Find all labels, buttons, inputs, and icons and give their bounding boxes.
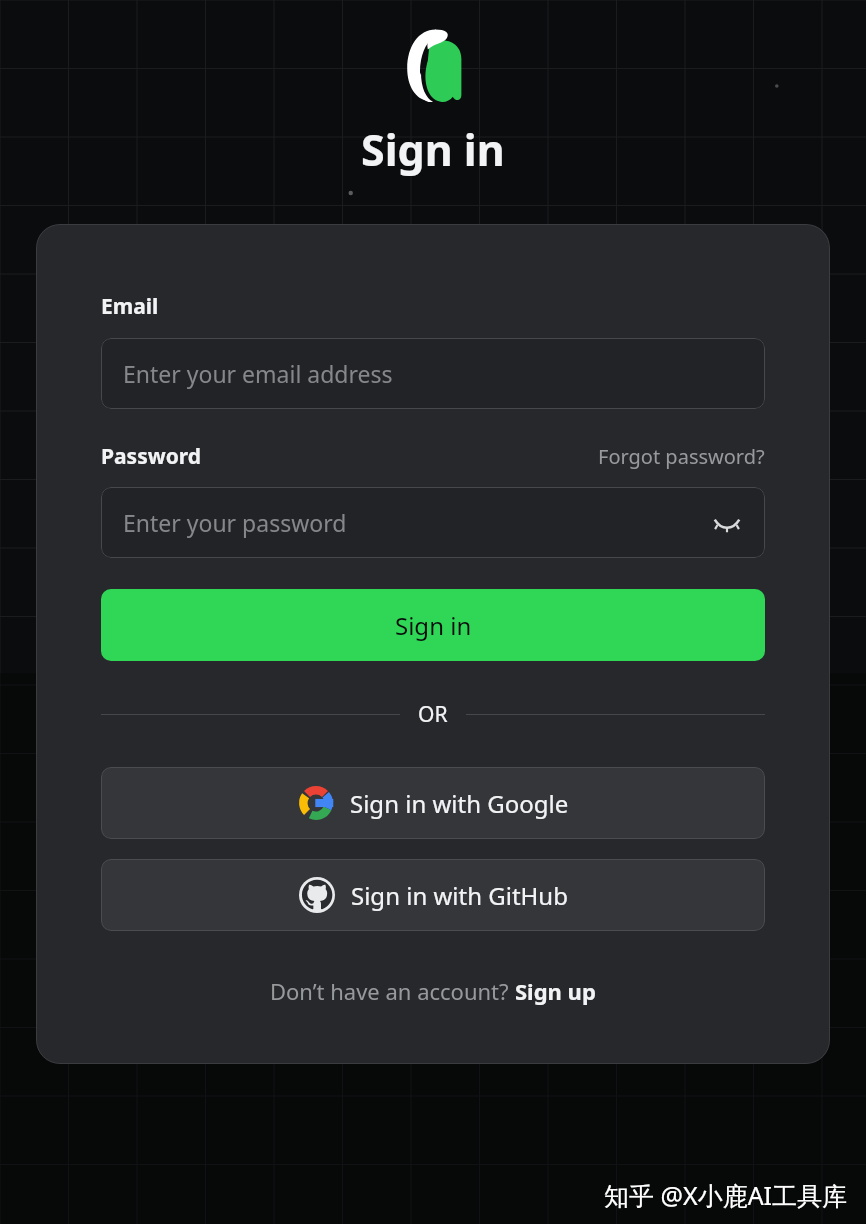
button[interactable]: Sign in: [101, 589, 765, 661]
staticText: Sign up: [515, 976, 596, 1006]
staticText: Enter your email address: [123, 358, 393, 389]
staticText: OR: [418, 700, 448, 729]
button[interactable]: Enter your password: [101, 487, 765, 558]
staticText: Password: [101, 442, 202, 471]
staticText: Sign in with Google: [350, 787, 569, 820]
button[interactable]: Forgot password?: [598, 443, 765, 470]
button[interactable]: Enter your email address: [101, 338, 765, 409]
staticText: Sign in: [361, 120, 505, 179]
button[interactable]: Show password: [707, 503, 747, 543]
staticText: Sign in with GitHub: [351, 879, 568, 912]
button[interactable]: Sign up: [515, 976, 596, 1006]
staticText: Sign in: [395, 609, 472, 642]
staticText: Forgot password?: [598, 443, 765, 470]
button[interactable]: Sign in with GitHub: [101, 859, 765, 931]
staticText: Email: [101, 292, 159, 321]
button[interactable]: Sign in with Google: [101, 767, 765, 839]
staticText: 知乎 @X小鹿AI工具库: [604, 1178, 848, 1212]
staticText: Enter your password: [123, 507, 347, 538]
staticText: Don’t have an account?: [270, 976, 515, 1006]
